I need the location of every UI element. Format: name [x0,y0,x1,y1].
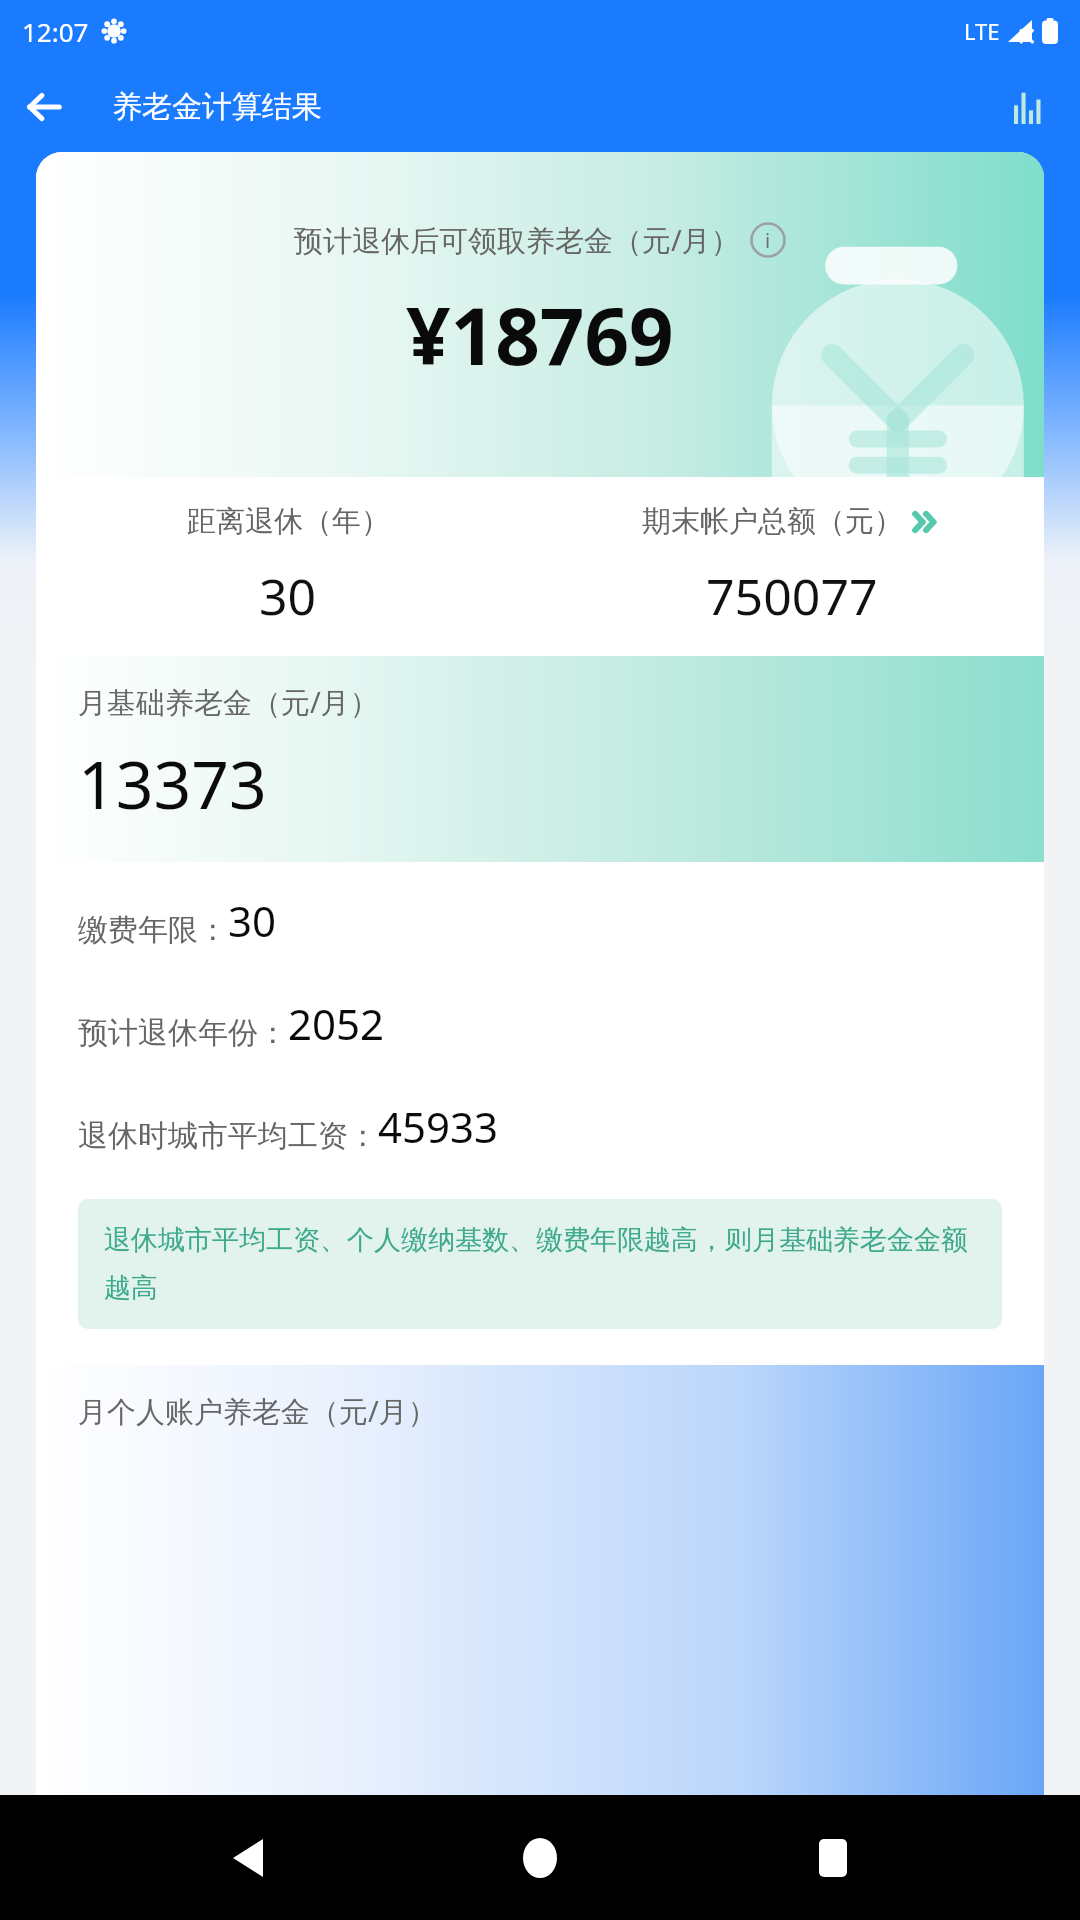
staticText: i [765,227,771,254]
other: More [909,505,943,539]
button[interactable]: Chart [996,72,1066,142]
button[interactable]: 缴费年限： [78,892,277,949]
button[interactable]: 期末帐户总额（元） [540,503,1044,630]
staticText: 12:07 [22,14,89,49]
staticText: 750077 [706,562,878,630]
staticText: 45933 [378,1098,499,1155]
staticText: 退休时城市平均工资： [78,1117,378,1155]
staticText: 2052 [288,995,385,1052]
button[interactable]: 预计退休年份： [78,995,385,1052]
button[interactable]: Back [203,1813,293,1903]
staticText: 月基础养老金（元/月） [78,682,379,722]
button[interactable]: Recents [788,1813,878,1903]
staticText: ¥18769 [406,282,674,388]
staticText: 30 [259,562,317,630]
staticText: 退休城市平均工资、个人缴纳基数、缴费年限越高，则月基础养老金金额越高 [104,1223,976,1305]
staticText: 13373 [78,738,267,828]
staticText: 缴费年限： [78,911,228,949]
staticText: 距离退休（年） [187,503,390,540]
staticText: 月个人账户养老金（元/月） [78,1391,437,1431]
staticText: LTE [964,16,1000,46]
staticText: 预计退休后可领取养老金（元/月） [294,220,740,260]
button[interactable]: Back [6,69,82,145]
button[interactable]: 退休时城市平均工资： [78,1098,499,1155]
other: Info [750,222,786,258]
button[interactable]: 距离退休（年） [36,503,540,630]
button[interactable]: 预计退休后可领取养老金（元/月） [294,220,786,260]
staticText: 预计退休年份： [78,1014,288,1052]
staticText: 期末帐户总额（元） [642,503,903,540]
button[interactable]: Home [495,1813,585,1903]
staticText: 养老金计算结果 [112,88,322,126]
staticText: 30 [228,892,277,949]
